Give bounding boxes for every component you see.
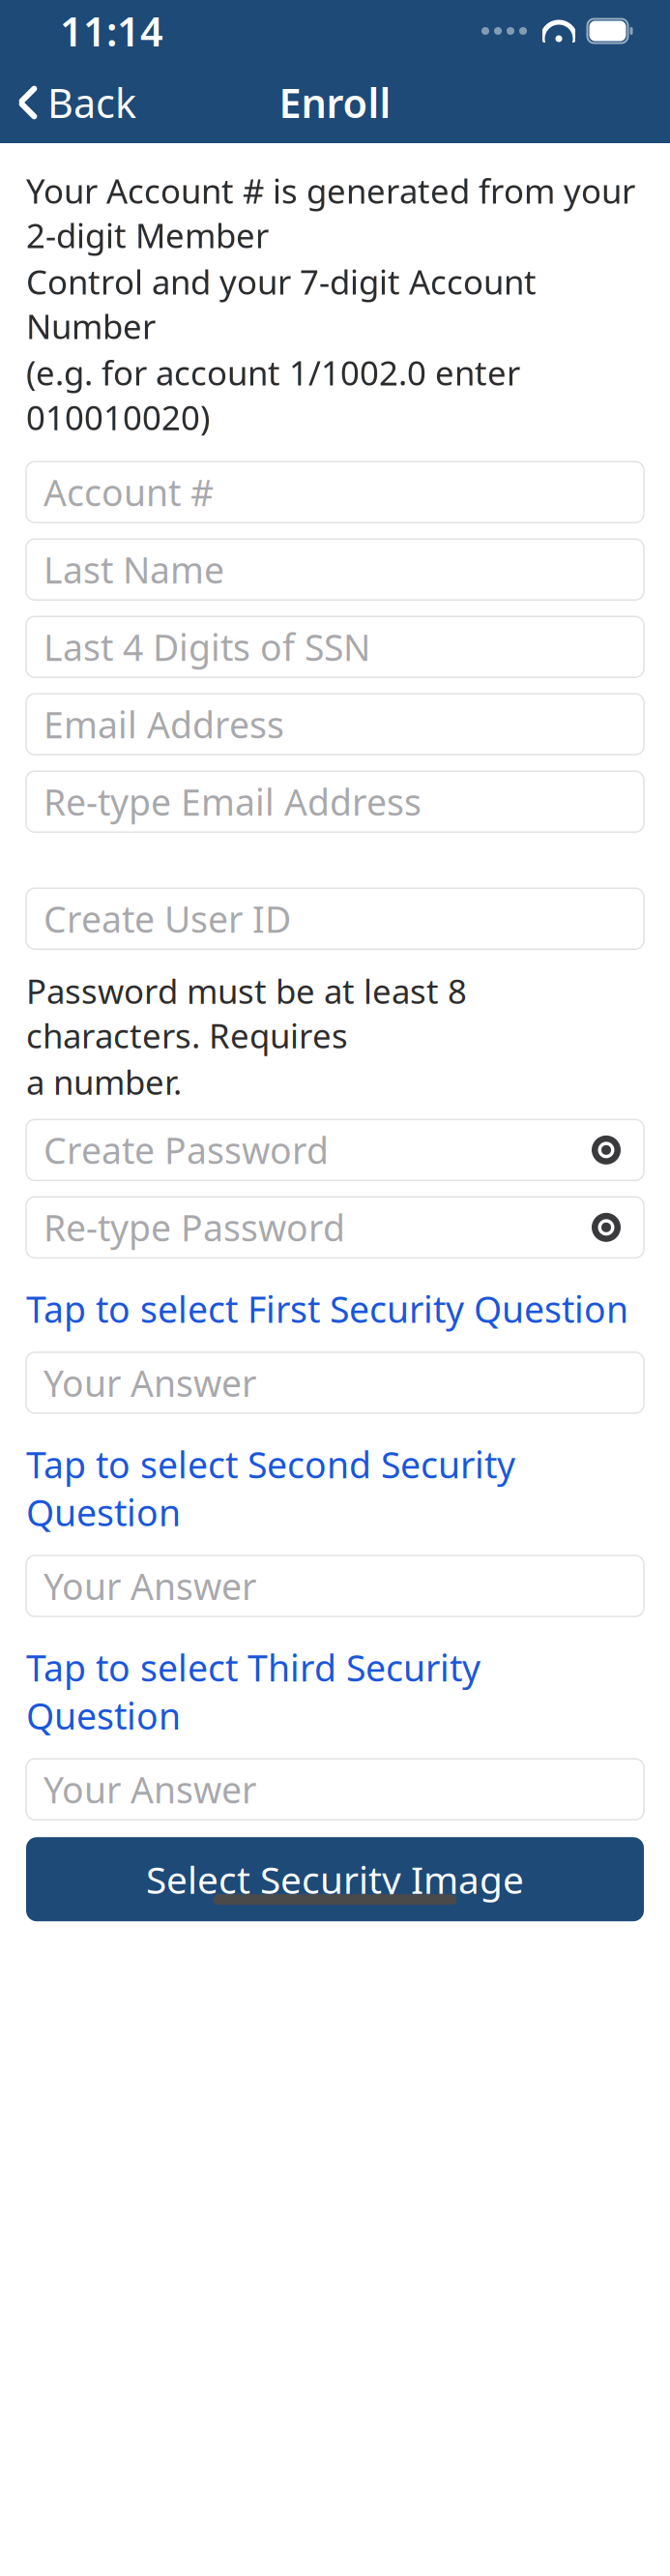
staticText: Last Name — [44, 545, 224, 593]
button[interactable]: Show password — [586, 1213, 626, 1242]
staticText: Tap to select Third Security Question — [26, 1644, 481, 1740]
staticText: Re-type Password — [44, 1203, 345, 1251]
staticText: Tap to select First Security Question — [26, 1285, 628, 1333]
staticText: Your Answer — [44, 1562, 256, 1610]
button[interactable]: Show password — [586, 1135, 626, 1164]
staticText: Control and your 7-digit Account Number — [26, 259, 537, 348]
staticText: Last 4 Digits of SSN — [44, 623, 370, 671]
staticText: Your Account # is generated from your 2-… — [26, 168, 635, 257]
staticText: Select Security Image — [146, 1854, 524, 1904]
staticText: Create User ID — [44, 895, 291, 943]
button[interactable]: Tap to select Third Security Question — [26, 1640, 644, 1743]
button[interactable]: Tap to select Second Security Question — [26, 1436, 644, 1540]
staticText: Tap to select Second Security Question — [26, 1440, 515, 1536]
staticText: a number. — [26, 1060, 182, 1104]
button[interactable]: Tap to select First Security Question — [26, 1281, 644, 1337]
staticText: (e.g. for account 1/1002.0 enter 0100100… — [26, 350, 520, 439]
staticText: Your Answer — [44, 1765, 256, 1813]
staticText: Enroll — [279, 76, 391, 129]
staticText: Create Password — [44, 1126, 329, 1174]
button[interactable]: Select Security Image — [26, 1837, 644, 1921]
staticText: Your Answer — [44, 1359, 256, 1407]
staticText: Back — [47, 76, 136, 129]
staticText: Re-type Email Address — [44, 778, 422, 826]
staticText: Password must be at least 8 characters. … — [26, 968, 467, 1058]
staticText: Account # — [44, 468, 214, 516]
staticText: Email Address — [44, 700, 284, 748]
button[interactable]: Back — [0, 68, 136, 137]
staticText: 11:14 — [60, 4, 163, 58]
